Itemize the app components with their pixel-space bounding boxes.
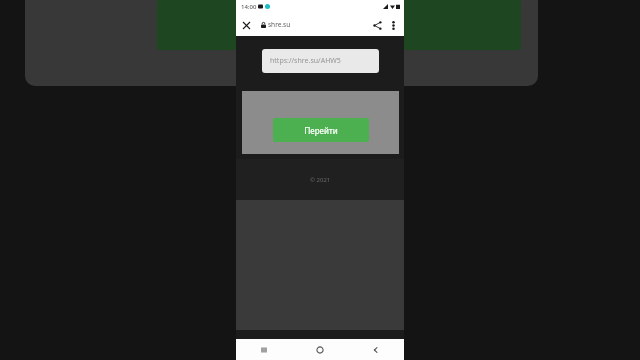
button[interactable]: https://shre.su/AHW5 <box>262 49 379 73</box>
staticText: 14:00 <box>241 3 257 11</box>
staticText: © 2021 <box>310 176 331 184</box>
staticText: shre.su <box>268 20 291 29</box>
button[interactable]: Close <box>238 17 254 33</box>
button[interactable]: Перейти <box>273 118 369 142</box>
staticText: Перейти <box>304 125 338 136</box>
button[interactable]: Home <box>292 339 348 360</box>
button[interactable]: More options <box>385 17 401 33</box>
button[interactable]: Recent apps <box>236 339 292 360</box>
button[interactable]: Back <box>348 339 404 360</box>
staticText: https://shre.su/AHW5 <box>270 56 341 66</box>
button[interactable]: Share <box>369 17 385 33</box>
